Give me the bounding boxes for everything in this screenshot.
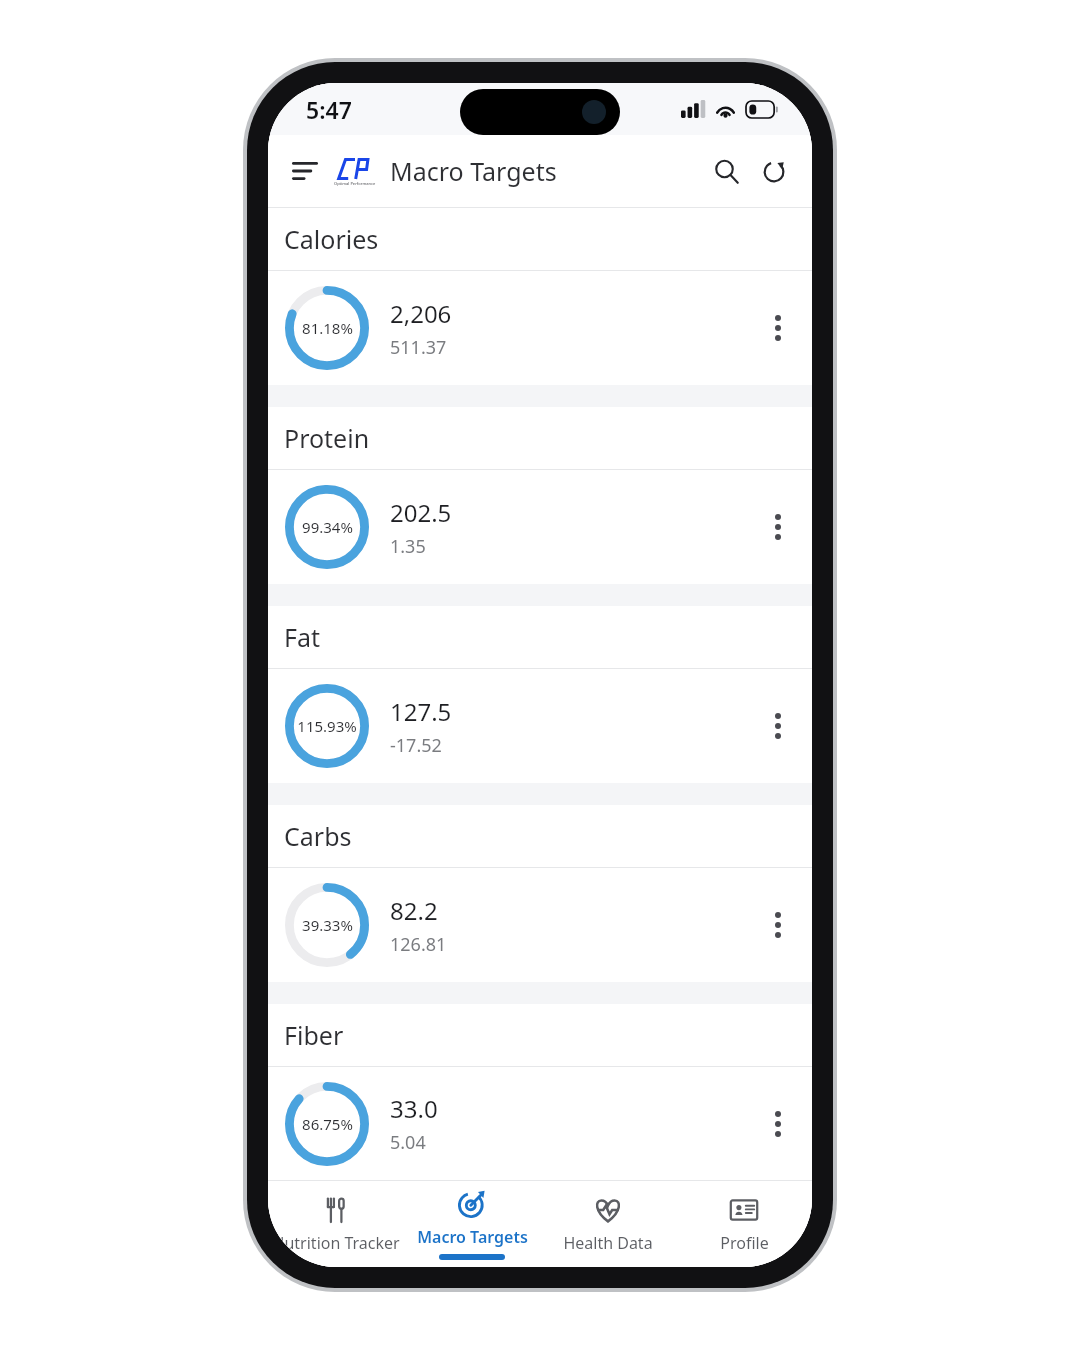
staticText: Protein <box>284 421 370 455</box>
button[interactable]: 99.34% <box>268 470 812 584</box>
staticText: Fiber <box>284 1018 344 1052</box>
staticText: 511.37 <box>390 335 447 360</box>
button[interactable]: 39.33% <box>268 868 812 982</box>
button[interactable]: More options <box>754 304 802 352</box>
button[interactable]: Refresh <box>750 147 798 195</box>
staticText: 5.04 <box>390 1130 426 1155</box>
button[interactable]: 115.93% <box>268 669 812 783</box>
button[interactable]: Menu <box>282 148 328 194</box>
button[interactable]: More options <box>754 901 802 949</box>
staticText: 127.5 <box>390 695 452 728</box>
staticText: Optimal Performance <box>334 181 376 186</box>
staticText: Nutrition Tracker <box>272 1232 400 1254</box>
staticText: 81.18% <box>302 318 353 338</box>
button[interactable]: 86.75% <box>268 1067 812 1180</box>
button[interactable]: Search <box>702 147 750 195</box>
button[interactable]: Macro Targets <box>404 1181 540 1267</box>
staticText: 82.2 <box>390 894 438 927</box>
staticText: Macro Targets <box>390 154 557 188</box>
staticText: 99.34% <box>302 517 353 537</box>
button[interactable]: Health Data <box>540 1181 676 1267</box>
staticText: 86.75% <box>302 1114 353 1134</box>
staticText: Profile <box>720 1232 769 1254</box>
button[interactable]: More options <box>754 503 802 551</box>
staticText: 1.35 <box>390 534 426 559</box>
staticText: Fat <box>284 620 321 654</box>
button[interactable]: More options <box>754 702 802 750</box>
staticText: -17.52 <box>390 733 442 758</box>
staticText: Macro Targets <box>417 1226 528 1248</box>
staticText: 39.33% <box>302 915 353 935</box>
button[interactable]: Profile <box>676 1181 812 1267</box>
staticText: Health Data <box>563 1232 653 1254</box>
button[interactable]: More options <box>754 1100 802 1148</box>
staticText: 126.81 <box>390 932 447 957</box>
staticText: Carbs <box>284 819 352 853</box>
button[interactable]: 81.18% <box>268 271 812 385</box>
staticText: 33.0 <box>390 1092 438 1125</box>
button[interactable]: Nutrition Tracker <box>268 1181 404 1267</box>
staticText: 5:47 <box>306 94 352 125</box>
staticText: 202.5 <box>390 496 452 529</box>
staticText: 115.93% <box>297 716 357 736</box>
staticText: Calories <box>284 222 379 256</box>
staticText: 2,206 <box>390 297 452 330</box>
